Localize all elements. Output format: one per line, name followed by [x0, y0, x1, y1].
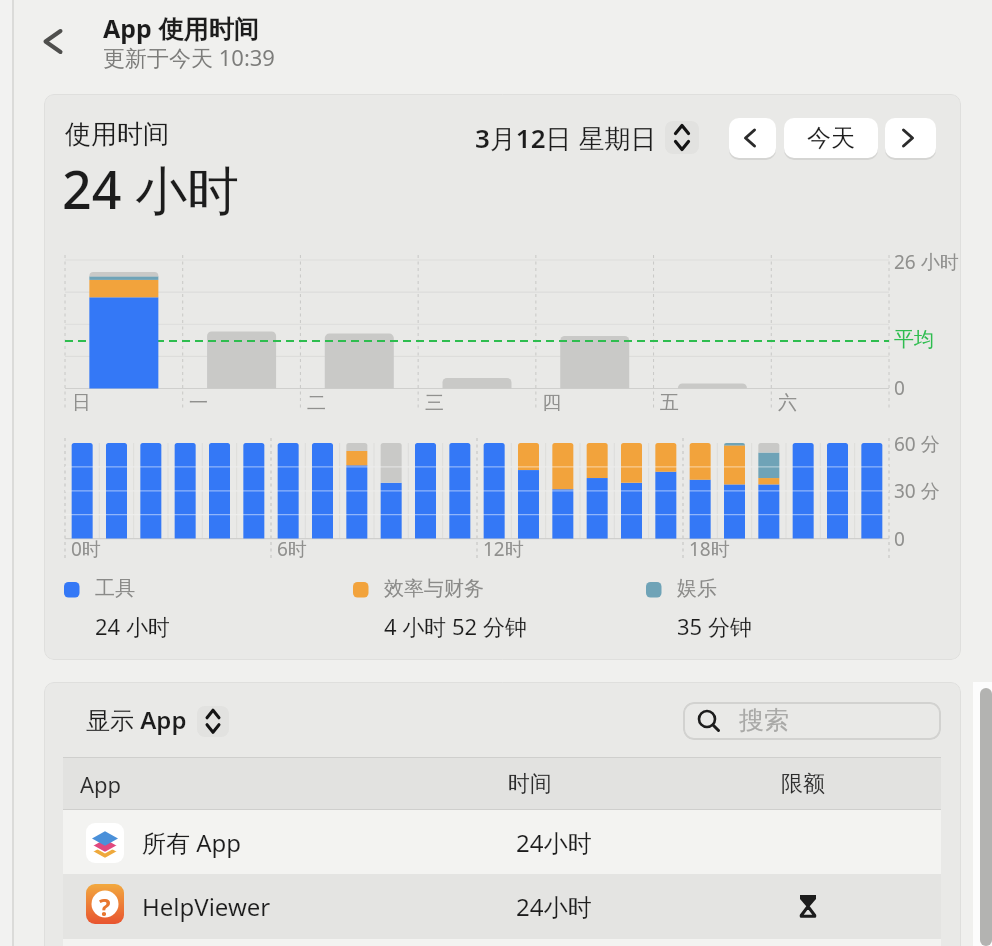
button[interactable]: [197, 706, 229, 737]
staticText: 限额: [781, 770, 825, 798]
staticText: 工具: [95, 576, 135, 601]
staticText: 24 小时: [95, 611, 170, 641]
staticText: 平均: [894, 327, 934, 352]
button[interactable]: [38, 24, 70, 60]
button[interactable]: [885, 118, 936, 158]
staticText: 60 分: [894, 431, 940, 457]
staticText: 35 分钟: [677, 611, 752, 641]
staticText: 显示 App: [86, 703, 187, 736]
staticText: 三: [425, 391, 444, 415]
button[interactable]: 今天: [784, 118, 878, 158]
staticText: 24小时: [516, 826, 592, 859]
staticText: 一: [189, 391, 208, 415]
staticText: 0: [894, 375, 905, 401]
staticText: 3月12日 星期日: [475, 120, 657, 156]
button[interactable]: [63, 874, 941, 939]
staticText: 娱乐: [677, 576, 717, 601]
staticText: App: [80, 769, 122, 799]
staticText: HelpViewer: [142, 890, 271, 923]
button[interactable]: [63, 810, 941, 874]
staticText: 18时: [689, 536, 730, 562]
button[interactable]: [665, 121, 699, 154]
staticText: 效率与财务: [384, 576, 484, 601]
staticText: 26 小时: [894, 249, 959, 275]
staticText: 搜索: [739, 705, 789, 736]
staticText: 所有 App: [142, 826, 242, 859]
staticText: 6时: [277, 536, 307, 562]
button[interactable]: [729, 118, 776, 158]
staticText: 六: [778, 391, 797, 415]
staticText: 0时: [71, 536, 101, 562]
button[interactable]: [683, 702, 941, 740]
staticText: 二: [307, 391, 326, 415]
staticText: 五: [660, 391, 679, 415]
staticText: 四: [542, 391, 561, 415]
staticText: 使用时间: [65, 118, 169, 151]
staticText: 日: [72, 391, 91, 415]
staticText: 更新于今天 10:39: [103, 42, 275, 72]
staticText: 24小时: [516, 890, 592, 923]
staticText: ?: [99, 890, 111, 918]
staticText: App 使用时间: [103, 11, 259, 45]
staticText: 12时: [483, 536, 524, 562]
staticText: 4 小时 52 分钟: [384, 611, 527, 641]
staticText: 30 分: [894, 478, 940, 504]
staticText: 时间: [508, 770, 552, 798]
staticText: 24 小时: [62, 153, 240, 224]
staticText: 今天: [807, 123, 855, 153]
staticText: 0: [894, 526, 905, 552]
